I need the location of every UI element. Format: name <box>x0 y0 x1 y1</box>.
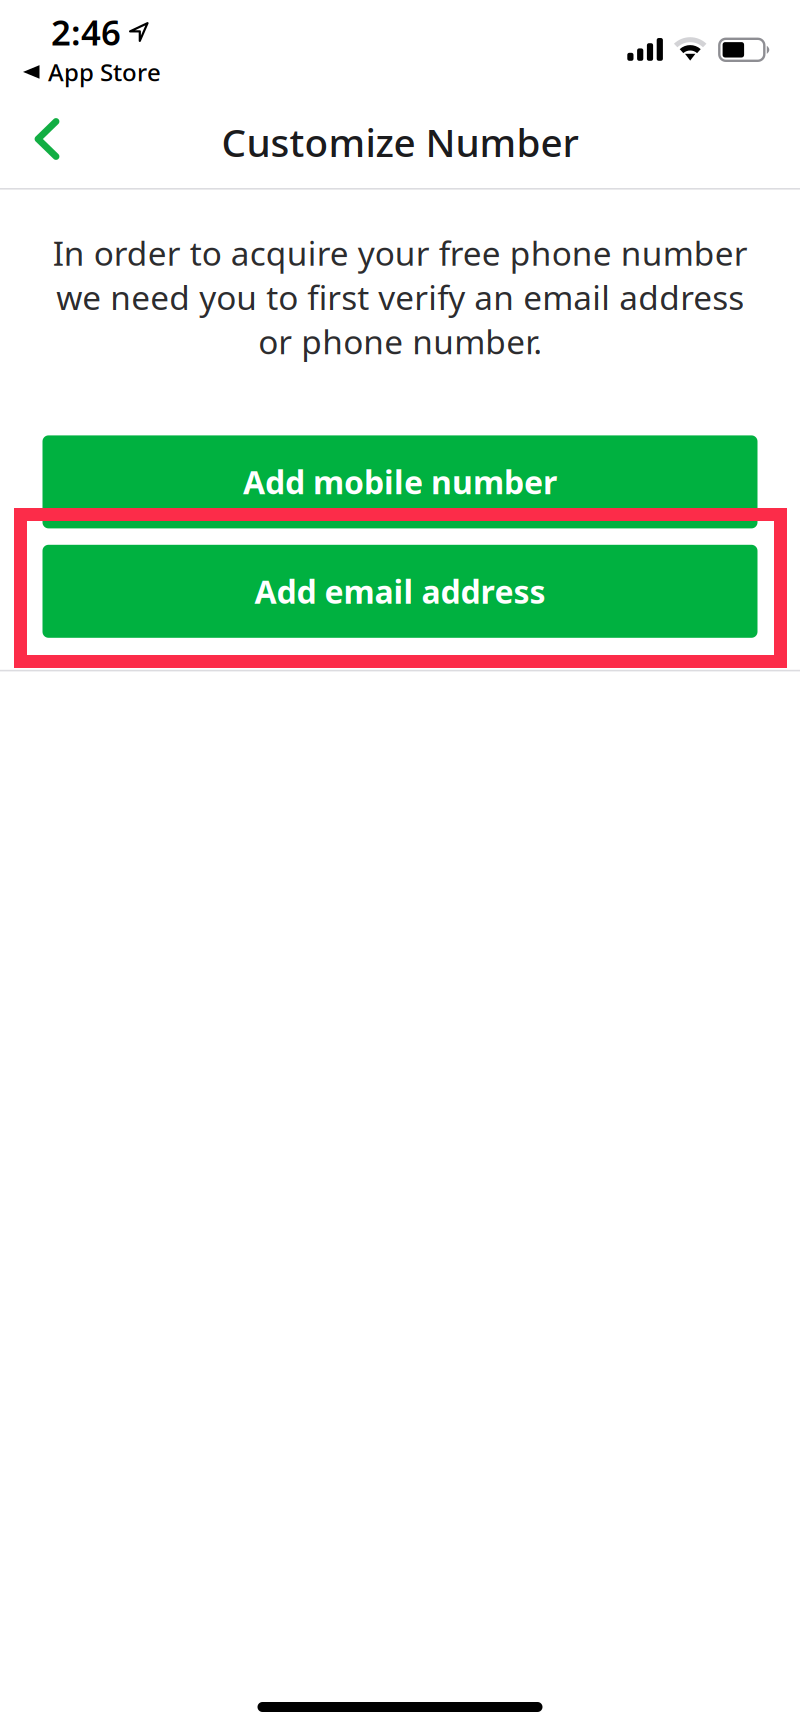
button[interactable]: Add email address <box>42 545 757 638</box>
staticText: Customize Number <box>221 116 578 168</box>
staticText: In order to acquire your free phone numb… <box>52 231 747 363</box>
staticText: 2:46 <box>51 9 121 55</box>
staticText: Add email address <box>254 570 545 612</box>
staticText: Add mobile number <box>243 461 557 503</box>
staticText: App Store <box>48 56 161 88</box>
button[interactable]: Add mobile number <box>42 435 757 528</box>
button[interactable]: App Store <box>0 51 173 93</box>
button[interactable]: Back <box>0 100 81 183</box>
